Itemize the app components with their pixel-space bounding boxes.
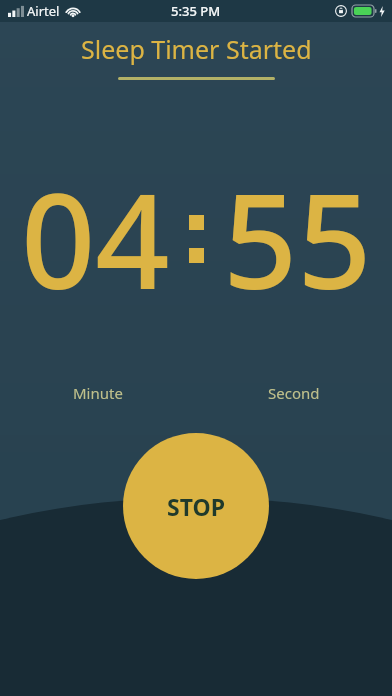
- staticText: Minute: [73, 383, 123, 403]
- staticText: STOP: [167, 491, 225, 522]
- staticText: 5:35 PM: [171, 2, 221, 20]
- button[interactable]: STOP: [123, 433, 269, 579]
- staticText: Sleep Timer Started: [81, 32, 312, 66]
- staticText: Airtel: [27, 2, 60, 20]
- staticText: Second: [268, 383, 320, 403]
- staticText: 55: [223, 150, 372, 327]
- staticText: 04: [21, 150, 170, 327]
